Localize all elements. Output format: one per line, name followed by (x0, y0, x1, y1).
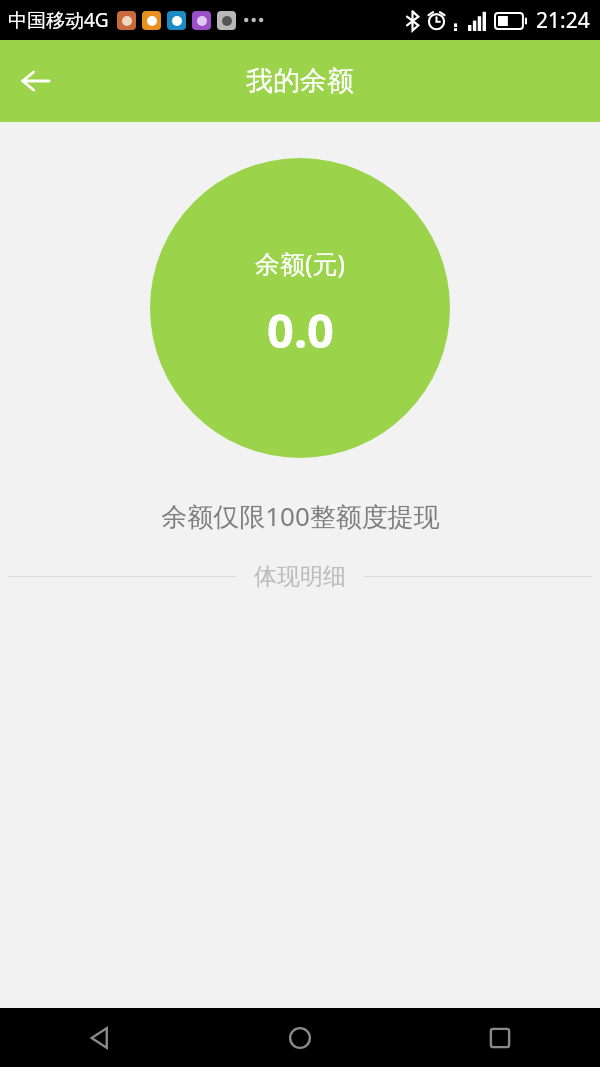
staticText: 余额(元) (255, 246, 346, 280)
staticText: 体现明细 (254, 562, 346, 591)
staticText: 21:24 (536, 6, 590, 35)
button[interactable]: 体现明细 (8, 562, 592, 591)
staticText: 中国移动4G (8, 7, 109, 33)
staticText: 我的余额 (246, 64, 354, 98)
button[interactable]: Back (0, 45, 72, 117)
staticText: 余额仅限100整额度提现 (161, 498, 440, 534)
staticText: 0.0 (267, 298, 334, 362)
button[interactable]: Home (200, 1008, 400, 1067)
button[interactable]: Back (0, 1008, 200, 1067)
button[interactable]: Recent apps (400, 1008, 600, 1067)
button[interactable]: 余额(元) (150, 158, 450, 458)
